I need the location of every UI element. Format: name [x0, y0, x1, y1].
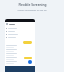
button[interactable] — [6, 33, 35, 36]
button[interactable] — [6, 45, 17, 48]
button[interactable] — [6, 49, 17, 52]
button[interactable] — [6, 27, 35, 30]
button[interactable]: Add — [28, 60, 32, 64]
button[interactable] — [6, 22, 35, 26]
button[interactable] — [6, 57, 17, 60]
staticText: Flexible Screening — [18, 3, 47, 7]
staticText: Screen candidates on the go — [17, 9, 47, 12]
button[interactable] — [23, 41, 32, 44]
button[interactable] — [6, 53, 17, 56]
button[interactable] — [6, 30, 35, 33]
button[interactable] — [6, 61, 17, 64]
button[interactable] — [6, 36, 35, 39]
